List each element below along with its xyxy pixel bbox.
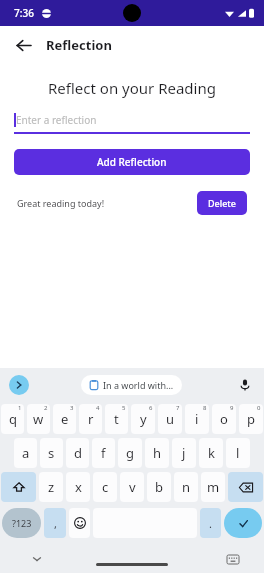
button[interactable]: z — [39, 472, 63, 502]
staticText: u — [166, 410, 175, 428]
button[interactable]: Enter — [224, 508, 262, 538]
staticText: In a world with... — [103, 379, 174, 391]
staticText: 7:36 — [14, 6, 34, 20]
button[interactable]: . — [200, 508, 221, 538]
button[interactable]: u — [158, 404, 182, 434]
button[interactable]: j — [172, 438, 196, 468]
button[interactable]: m — [201, 472, 225, 502]
staticText: Enter a reflection — [16, 113, 97, 127]
staticText: t — [114, 410, 119, 428]
button[interactable]: c — [93, 472, 117, 502]
staticText: s — [48, 444, 55, 462]
staticText: 1 — [18, 404, 22, 412]
staticText: b — [155, 478, 163, 496]
button[interactable]: p — [239, 404, 263, 434]
button[interactable]: ?123 — [2, 508, 41, 538]
staticText: 5 — [122, 404, 126, 412]
button[interactable]: Backspace — [228, 472, 263, 502]
staticText: y — [140, 410, 147, 428]
staticText: k — [208, 444, 215, 462]
button[interactable]: s — [40, 438, 63, 468]
button[interactable]: q — [1, 404, 24, 434]
staticText: , — [54, 516, 57, 531]
staticText: l — [236, 444, 240, 462]
button[interactable]: Delete — [197, 191, 247, 215]
button[interactable]: n — [174, 472, 198, 502]
staticText: p — [247, 410, 255, 428]
staticText: a — [22, 444, 30, 462]
staticText: m — [207, 478, 220, 496]
staticText: 7 — [176, 404, 180, 412]
staticText: Reflect on your Reading — [0, 78, 264, 98]
staticText: 3 — [70, 404, 74, 412]
staticText: f — [101, 444, 106, 462]
staticText: x — [75, 478, 82, 496]
staticText: Add Reflection — [97, 155, 167, 169]
staticText: c — [102, 478, 109, 496]
button[interactable]: y — [131, 404, 155, 434]
button[interactable]: Add Reflection — [14, 149, 250, 175]
button[interactable]: x — [66, 472, 90, 502]
staticText: 2 — [44, 404, 48, 412]
staticText: d — [74, 444, 82, 462]
staticText: 6 — [149, 404, 153, 412]
button[interactable]: Hide keyboard — [28, 550, 46, 568]
staticText: 9 — [230, 404, 234, 412]
button[interactable]: i — [185, 404, 209, 434]
button[interactable]: d — [66, 438, 89, 468]
staticText: Reflection — [46, 36, 112, 54]
button[interactable]: e — [53, 404, 76, 434]
button[interactable]: Back — [8, 30, 38, 60]
staticText: h — [153, 444, 162, 462]
button[interactable]: f — [92, 438, 115, 468]
button[interactable]: Emoji — [69, 508, 90, 538]
staticText: n — [182, 478, 191, 496]
staticText: o — [220, 410, 228, 428]
staticText: r — [88, 410, 94, 428]
button[interactable]: g — [118, 438, 142, 468]
button[interactable]: , — [44, 508, 66, 538]
staticText: w — [33, 410, 44, 428]
button[interactable]: In a world with... — [81, 375, 182, 395]
button[interactable]: r — [79, 404, 102, 434]
staticText: q — [9, 410, 17, 428]
button[interactable]: w — [27, 404, 50, 434]
staticText: 8 — [203, 404, 207, 412]
staticText: Delete — [208, 197, 236, 209]
button[interactable]: Enter a reflection — [14, 113, 250, 134]
button[interactable]: Change keyboard — [224, 550, 242, 568]
staticText: v — [129, 478, 136, 496]
staticText: j — [182, 444, 186, 462]
staticText: g — [126, 444, 134, 462]
button[interactable]: h — [145, 438, 169, 468]
button[interactable]: More suggestions — [9, 375, 29, 395]
staticText: 4 — [96, 404, 100, 412]
button[interactable]: v — [120, 472, 144, 502]
staticText: Great reading today! — [17, 197, 105, 209]
button[interactable]: Voice input — [235, 375, 255, 395]
staticText: . — [209, 516, 212, 531]
button[interactable]: a — [14, 438, 37, 468]
staticText: 0 — [257, 404, 261, 412]
button[interactable]: l — [226, 438, 250, 468]
button[interactable]: k — [199, 438, 223, 468]
staticText: ?123 — [12, 517, 32, 529]
button[interactable]: o — [212, 404, 236, 434]
button[interactable]: Shift — [1, 472, 36, 502]
button[interactable]: b — [147, 472, 171, 502]
staticText: e — [61, 410, 69, 428]
staticText: z — [48, 478, 55, 496]
button[interactable]: t — [105, 404, 128, 434]
staticText: i — [195, 410, 199, 428]
